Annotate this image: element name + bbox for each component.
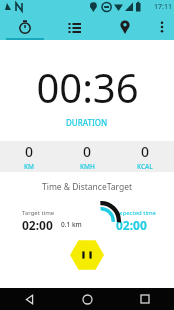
button[interactable]: Recent apps bbox=[116, 288, 174, 310]
button[interactable]: Back bbox=[0, 288, 58, 310]
button[interactable]: Map bbox=[100, 14, 150, 40]
staticText: 0 bbox=[83, 142, 92, 161]
staticText: 17:11 bbox=[154, 2, 172, 12]
button[interactable]: More options bbox=[150, 14, 174, 40]
staticText: KM bbox=[24, 162, 35, 171]
button[interactable]: 0 bbox=[116, 141, 174, 172]
staticText: DURATION bbox=[66, 117, 108, 128]
staticText: 02:00 bbox=[22, 217, 53, 233]
button[interactable]: Stopwatch bbox=[0, 14, 50, 40]
staticText: 00:36 bbox=[36, 60, 139, 114]
button[interactable]: 0 bbox=[58, 141, 116, 172]
staticText: 0 bbox=[141, 142, 150, 161]
button[interactable]: History bbox=[50, 14, 100, 40]
button[interactable]: 0 bbox=[0, 141, 58, 172]
staticText: Target time bbox=[22, 209, 55, 217]
staticText: 0 bbox=[25, 142, 34, 161]
staticText: Time & DistanceTarget bbox=[0, 181, 174, 193]
staticText: KMH bbox=[80, 162, 95, 171]
staticText: Expected time bbox=[116, 209, 156, 217]
staticText: 0.1 km bbox=[61, 220, 82, 229]
staticText: KCAL bbox=[137, 162, 153, 171]
button[interactable]: Home bbox=[58, 288, 116, 310]
button[interactable]: Pause bbox=[70, 238, 104, 272]
staticText: 02:00 bbox=[116, 217, 147, 233]
